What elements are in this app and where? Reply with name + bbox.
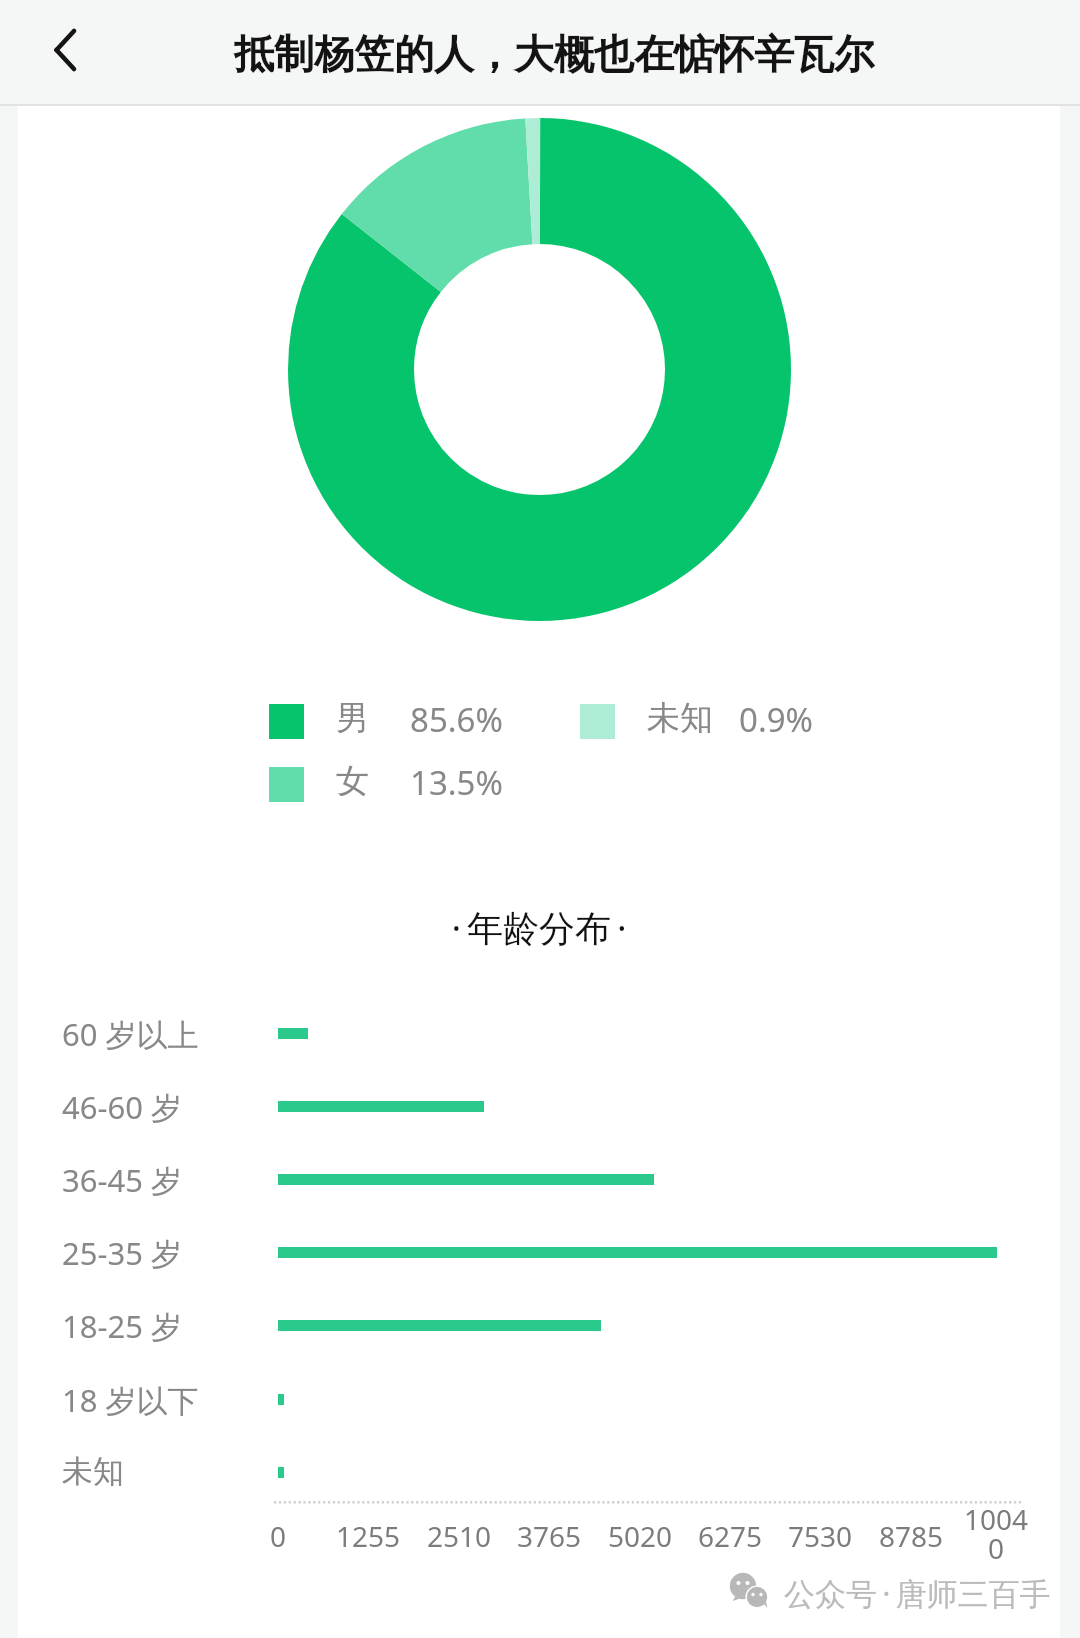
staticText: 18-25 岁 — [62, 1305, 182, 1347]
staticText: 46-60 岁 — [62, 1086, 182, 1128]
staticText: 7530 — [760, 1517, 880, 1555]
staticText: 13.5% — [410, 760, 503, 805]
staticText: 5020 — [580, 1517, 700, 1555]
button[interactable]: 36-45 岁 — [52, 1149, 1036, 1222]
button[interactable]: 未知 — [580, 693, 860, 751]
button[interactable]: 60 岁以上 — [52, 1003, 1036, 1076]
staticText: 25-35 岁 — [62, 1232, 182, 1274]
staticText: 60 岁以上 — [62, 1013, 199, 1055]
staticText: 2510 — [399, 1517, 519, 1555]
staticText: 1004 — [936, 1500, 1056, 1538]
button[interactable]: 公众号 · 唐师三百手 — [728, 1571, 1051, 1615]
staticText: 1255 — [308, 1517, 428, 1555]
staticText: 女 — [336, 760, 369, 802]
staticText: 0.9% — [739, 697, 814, 742]
staticText: 6275 — [670, 1517, 790, 1555]
staticText: 公众号 · 唐师三百手 — [784, 1572, 1051, 1614]
staticText: 男 — [336, 697, 369, 739]
staticText: 未知 — [62, 1452, 124, 1491]
button[interactable]: 18 岁以下 — [52, 1369, 1036, 1442]
staticText: 8785 — [851, 1517, 971, 1555]
staticText: 抵制杨笠的人，大概也在惦怀辛瓦尔 — [234, 29, 874, 79]
staticText: · 年龄分布 · — [18, 903, 1060, 952]
staticText: 18 岁以下 — [62, 1379, 199, 1421]
button[interactable]: 18-25 岁 — [52, 1295, 1036, 1368]
button[interactable]: 46-60 岁 — [52, 1076, 1036, 1149]
button[interactable]: Back — [22, 18, 92, 88]
button[interactable]: 未知 — [52, 1442, 1036, 1515]
staticText: 36-45 岁 — [62, 1159, 182, 1201]
button[interactable]: 25-35 岁 — [52, 1222, 1036, 1295]
staticText: 0 — [936, 1529, 1056, 1567]
staticText: 3765 — [489, 1517, 609, 1555]
button[interactable]: 女 — [269, 756, 549, 814]
staticText: 0 — [218, 1517, 338, 1555]
staticText: 未知 — [647, 697, 713, 739]
button[interactable]: 男 — [269, 693, 549, 751]
staticText: 85.6% — [410, 697, 503, 742]
